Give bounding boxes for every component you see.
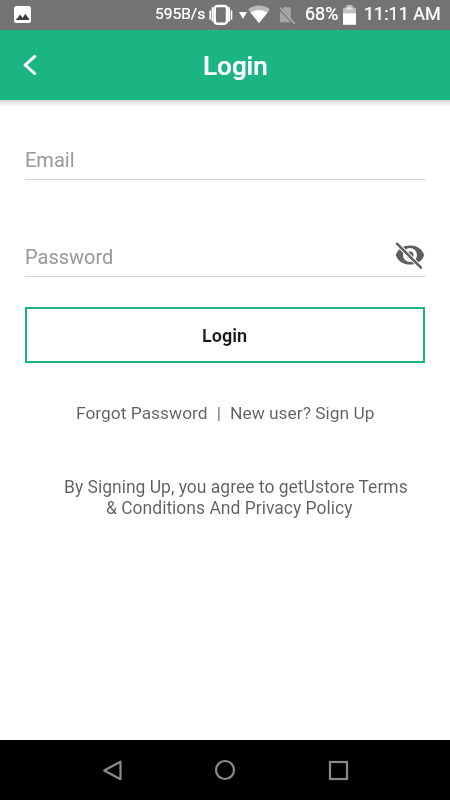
staticText: Email: [25, 148, 75, 171]
button[interactable]: Show password: [393, 238, 427, 272]
staticText: 68%: [305, 3, 339, 24]
button[interactable]: Recent apps: [314, 746, 362, 794]
staticText: Password: [25, 245, 114, 268]
button[interactable]: Forgot Password: [76, 403, 208, 423]
staticText: New user? Sign Up: [230, 403, 375, 423]
staticText: |: [208, 403, 230, 423]
button[interactable]: Password: [25, 238, 385, 280]
staticText: Login: [202, 325, 248, 346]
button[interactable]: Navigate back: [8, 43, 52, 87]
button[interactable]: Login: [25, 307, 425, 363]
staticText: & Conditions And Privacy Policy: [106, 498, 353, 519]
button[interactable]: Email: [25, 141, 425, 183]
staticText: 11:11 AM: [364, 3, 441, 24]
button[interactable]: Back: [88, 746, 136, 794]
staticText: Forgot Password: [76, 403, 208, 423]
button[interactable]: Home: [201, 746, 249, 794]
staticText: 595B/s: [155, 5, 206, 23]
button[interactable]: New user? Sign Up: [230, 403, 375, 423]
staticText: By Signing Up, you agree to getUstore Te…: [64, 477, 408, 498]
button[interactable]: By Signing Up, you agree to getUstore Te…: [0, 477, 450, 523]
staticText: Login: [203, 51, 268, 81]
